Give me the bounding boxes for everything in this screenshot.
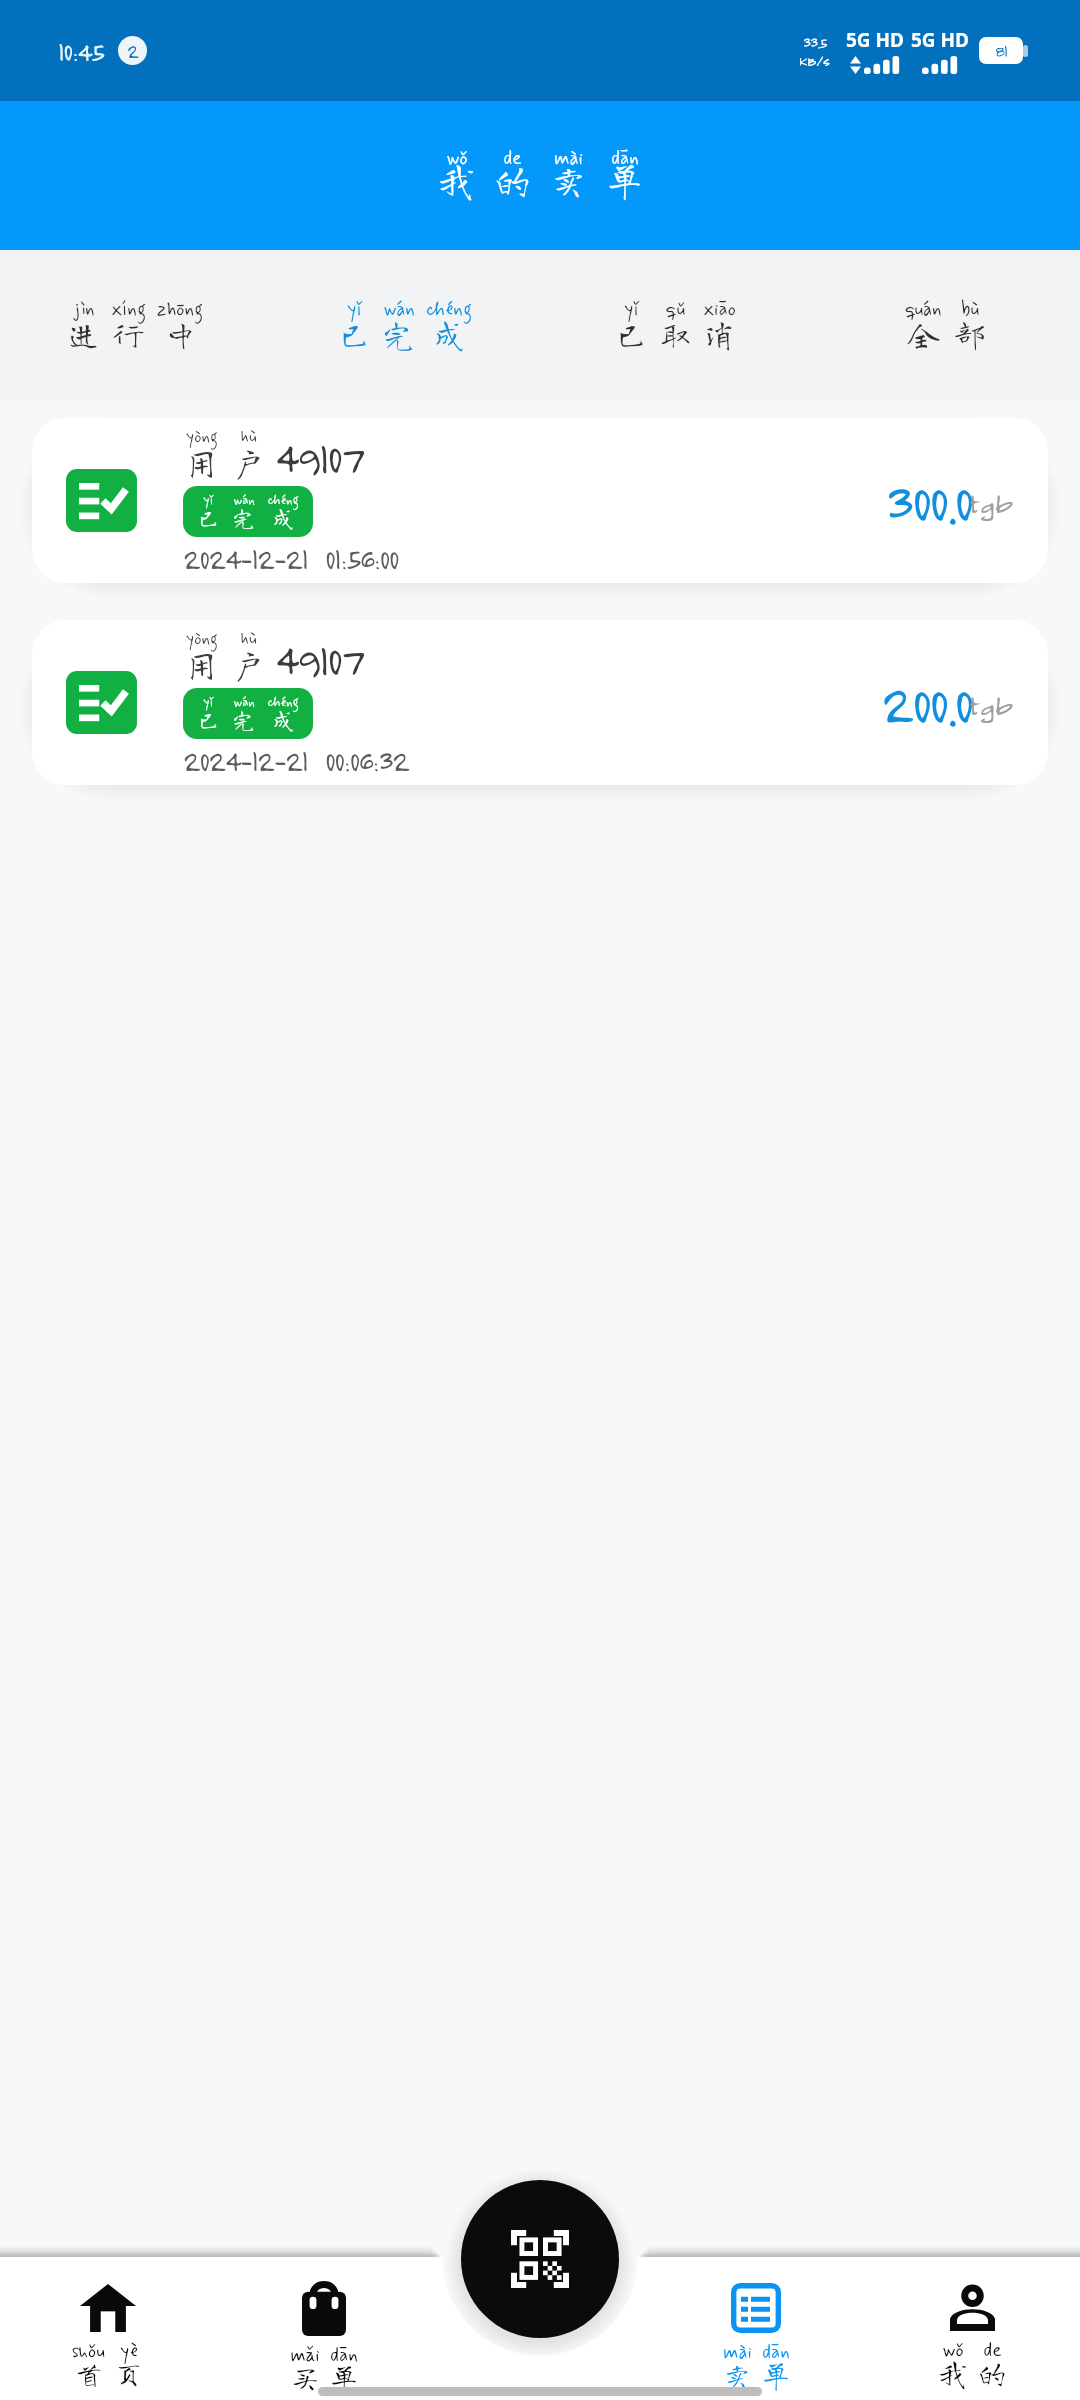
staticText: 2024-12-21 00:06:32: [183, 743, 409, 778]
staticText: 取: [659, 318, 692, 350]
staticText: 户: [230, 646, 267, 682]
staticText: 户: [230, 444, 267, 480]
staticText: 全: [907, 318, 940, 350]
staticText: 33.5: [803, 33, 827, 51]
staticText: tgb: [969, 483, 1013, 520]
staticText: 单: [605, 161, 644, 199]
staticText: 5G HD: [911, 27, 970, 53]
staticText: hù: [240, 426, 257, 448]
staticText: zhōng: [157, 297, 203, 322]
staticText: yòng: [186, 426, 218, 448]
staticText: yǐ: [203, 492, 214, 509]
staticText: 成: [272, 709, 295, 731]
staticText: 首: [74, 2359, 104, 2389]
staticText: yǐ: [624, 297, 640, 322]
staticText: 单: [761, 2360, 791, 2390]
staticText: 页: [114, 2359, 144, 2389]
staticText: dān: [611, 146, 639, 171]
staticText: 成: [272, 507, 295, 529]
staticText: 完: [382, 318, 415, 350]
staticText: dān: [762, 2340, 790, 2365]
staticText: xiāo: [703, 297, 736, 322]
staticText: dān: [330, 2343, 358, 2368]
staticText: 部: [953, 318, 986, 350]
staticText: wǒ: [942, 2338, 964, 2363]
staticText: 用: [183, 444, 220, 480]
staticText: yǐ: [347, 297, 363, 322]
staticText: 行: [112, 318, 145, 350]
staticText: wǒ: [446, 146, 468, 171]
staticText: 49107: [275, 432, 363, 483]
staticText: 用: [183, 646, 220, 682]
staticText: 我: [938, 2358, 968, 2388]
staticText: 消: [703, 318, 736, 350]
staticText: yǐ: [203, 694, 214, 711]
staticText: 的: [493, 161, 532, 199]
staticText: 2024-12-21 01:56:00: [183, 541, 398, 576]
staticText: 已: [197, 507, 220, 529]
staticText: 完: [232, 507, 255, 529]
staticText: 买: [290, 2363, 320, 2393]
staticText: chéng: [426, 297, 472, 322]
staticText: 300.0: [885, 468, 972, 534]
button[interactable]: mǎi: [216, 2277, 432, 2400]
button[interactable]: mài: [648, 2277, 864, 2400]
staticText: hù: [240, 628, 257, 650]
staticText: shǒu: [72, 2339, 105, 2364]
staticText: 已: [197, 709, 220, 731]
staticText: wán: [383, 297, 415, 322]
button[interactable]: yǐ: [540, 250, 810, 400]
staticText: 进: [67, 318, 100, 350]
staticText: yòng: [186, 628, 218, 650]
staticText: 49107: [275, 634, 363, 685]
staticText: 5G HD: [846, 27, 905, 53]
button[interactable]: Scan QR code: [461, 2180, 619, 2338]
staticText: mài: [554, 146, 583, 171]
staticText: 单: [329, 2363, 359, 2393]
staticText: xíng: [111, 297, 146, 322]
staticText: mǎi: [290, 2343, 320, 2368]
staticText: KB/s: [799, 51, 830, 69]
button[interactable]: jìn: [0, 250, 270, 400]
staticText: 已: [615, 318, 648, 350]
staticText: wán: [233, 492, 255, 509]
staticText: wán: [233, 694, 255, 711]
staticText: 10:45: [58, 35, 104, 67]
staticText: 中: [164, 318, 197, 350]
button[interactable]: yòng: [32, 620, 1048, 785]
staticText: quán: [905, 297, 942, 322]
button[interactable]: quán: [810, 250, 1080, 400]
staticText: 卖: [722, 2360, 752, 2390]
staticText: mài: [723, 2340, 752, 2365]
staticText: 2: [127, 39, 139, 63]
staticText: de: [503, 146, 522, 171]
staticText: 已: [338, 318, 371, 350]
button[interactable]: wǒ: [864, 2277, 1080, 2400]
staticText: chéng: [267, 694, 299, 711]
staticText: yè: [120, 2339, 138, 2364]
staticText: de: [983, 2338, 1002, 2363]
button[interactable]: shǒu: [0, 2277, 216, 2400]
staticText: tgb: [969, 685, 1013, 722]
staticText: 81: [995, 40, 1008, 61]
button[interactable]: yǐ: [270, 250, 540, 400]
staticText: bù: [961, 297, 979, 322]
staticText: 200.0: [881, 670, 972, 736]
staticText: 我: [437, 161, 476, 199]
button[interactable]: yòng: [32, 418, 1048, 583]
staticText: jìn: [73, 297, 95, 322]
staticText: chéng: [267, 492, 299, 509]
staticText: 成: [433, 318, 466, 350]
staticText: 卖: [549, 161, 588, 199]
staticText: 的: [977, 2358, 1007, 2388]
staticText: qǔ: [666, 297, 685, 322]
staticText: 完: [232, 709, 255, 731]
